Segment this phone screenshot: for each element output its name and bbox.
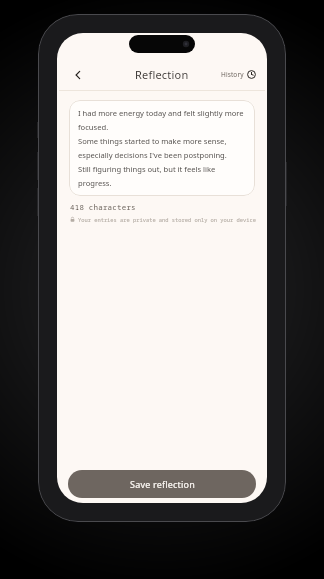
staticText: Your entries are private and stored only… <box>78 216 256 223</box>
staticText: History <box>221 70 244 79</box>
button[interactable]: I had more energy today and felt slightl… <box>69 100 255 196</box>
staticText: 418 characters <box>70 202 136 212</box>
button[interactable]: Back <box>67 64 89 86</box>
button[interactable]: History <box>218 67 259 82</box>
staticText: I had more energy today and felt slightl… <box>78 108 246 188</box>
staticText: Save reflection <box>130 478 195 490</box>
staticText: Reflection <box>135 67 189 82</box>
button[interactable]: Save reflection <box>68 470 256 498</box>
